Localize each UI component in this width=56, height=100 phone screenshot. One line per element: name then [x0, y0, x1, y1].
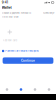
- staticText: finish your order: [2, 15, 19, 18]
- staticText: Wallet: [2, 5, 12, 9]
- staticText: Need help?: [43, 12, 54, 14]
- staticText: 9:41: [2, 1, 8, 4]
- staticText: Choose a payment method to: [2, 12, 31, 14]
- button[interactable]: Add new card: [1, 19, 19, 46]
- staticText: Continue: [21, 59, 35, 62]
- button[interactable]: Wallet: [14, 85, 28, 94]
- staticText: Payments are securely encrypted: [5, 49, 38, 52]
- button[interactable]: Orders: [28, 85, 42, 94]
- staticText: Add new card: [3, 39, 17, 42]
- button[interactable]: Home: [0, 85, 14, 94]
- button[interactable]: Continue: [0, 56, 56, 64]
- button[interactable]: Profile: [42, 85, 56, 94]
